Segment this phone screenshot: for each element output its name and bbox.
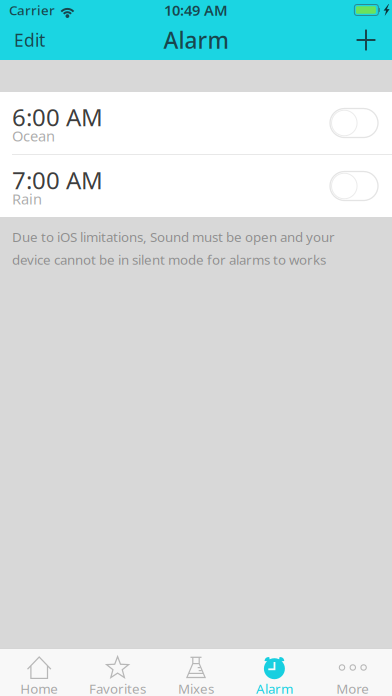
staticText: Favorites (89, 680, 146, 696)
staticText: Alarm (163, 25, 228, 55)
staticText: Edit (14, 28, 45, 51)
staticText: Due to iOS limitations, Sound must be op… (12, 228, 335, 246)
staticText: Carrier (9, 1, 55, 19)
button[interactable]: 6:00 AM (0, 92, 392, 154)
button[interactable]: Favorites (78, 648, 157, 696)
staticText: 6:00 AM (12, 101, 103, 133)
staticText: More (336, 680, 369, 696)
staticText: Alarm (256, 680, 293, 696)
staticText: Home (20, 680, 58, 696)
button[interactable]: Mixes (157, 648, 235, 696)
button[interactable]: 7:00 AM (0, 155, 392, 217)
staticText: Rain (12, 189, 42, 208)
button[interactable]: Alarm (235, 648, 314, 696)
staticText: device cannot be in silent mode for alar… (12, 251, 326, 268)
button[interactable]: More (314, 648, 392, 696)
staticText: 7:00 AM (12, 164, 103, 196)
button[interactable]: Edit (0, 20, 59, 60)
staticText: Ocean (12, 126, 55, 145)
button[interactable]: Home (0, 648, 78, 696)
staticText: 10:49 AM (164, 0, 228, 20)
staticText: Mixes (178, 680, 214, 696)
button[interactable]: Add alarm (344, 20, 392, 60)
